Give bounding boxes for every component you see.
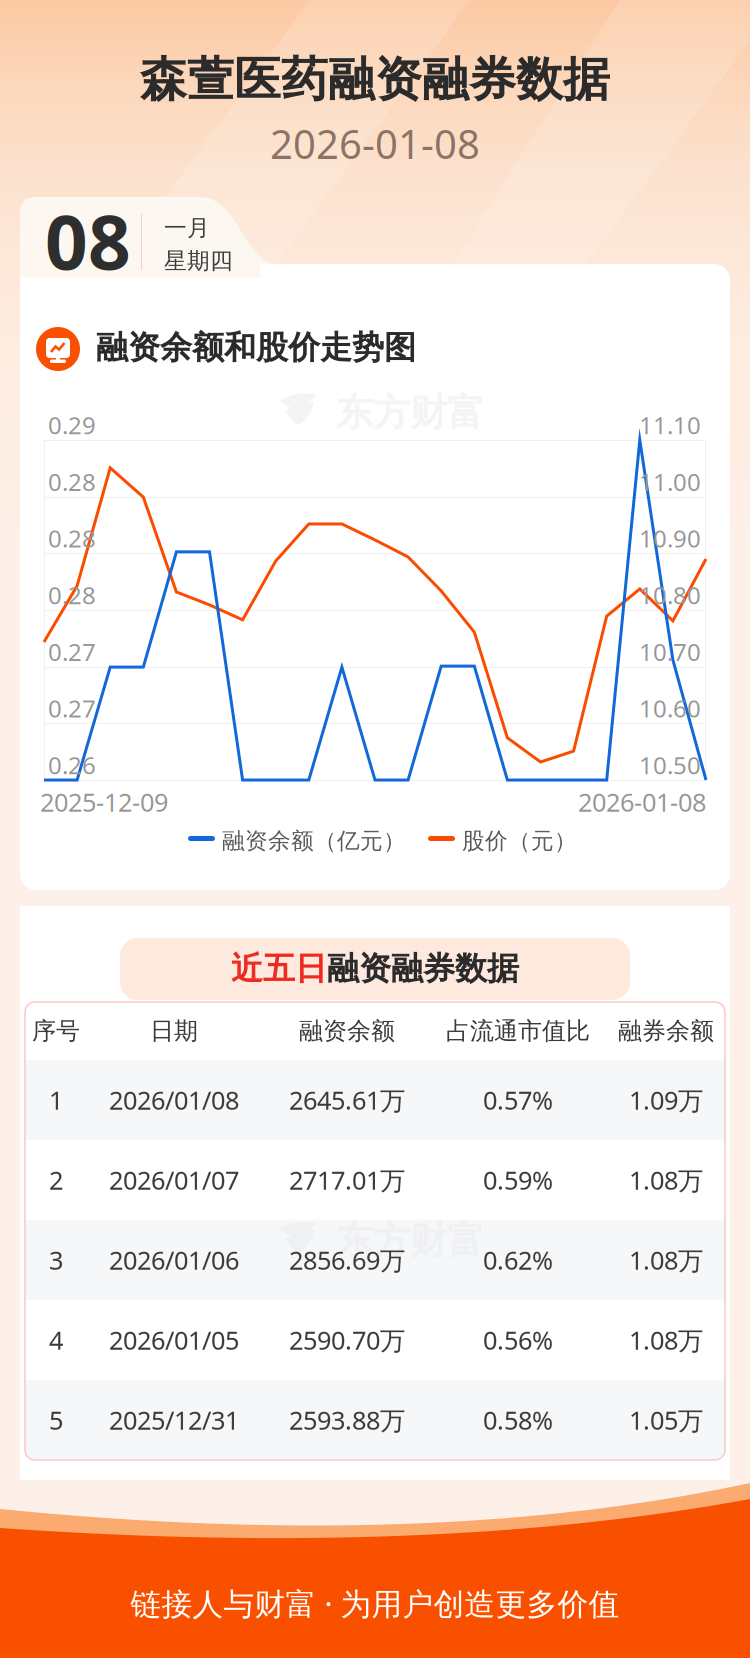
- staticText: 0.26: [48, 749, 96, 781]
- staticText: 近五日: [231, 949, 327, 988]
- staticText: 2593.88万: [289, 1403, 405, 1437]
- staticText: 0.29: [48, 409, 96, 441]
- staticText: 0.57%: [483, 1083, 553, 1117]
- staticText: 0.58%: [483, 1403, 553, 1437]
- staticText: 2026/01/08: [109, 1083, 239, 1117]
- staticText: 融资融券数据: [327, 949, 519, 988]
- staticText: 0.27: [48, 692, 96, 724]
- staticText: 1.08万: [629, 1163, 703, 1197]
- staticText: 日期: [150, 1016, 198, 1046]
- staticText: 2590.70万: [289, 1323, 405, 1357]
- staticText: 11.00: [639, 466, 701, 498]
- staticText: 链接人与财富 · 为用户创造更多价值: [130, 1583, 619, 1624]
- staticText: 0.28: [48, 579, 96, 611]
- staticText: 一月: [164, 214, 210, 242]
- staticText: 10.90: [639, 522, 701, 554]
- staticText: 10.80: [639, 579, 701, 611]
- staticText: 融资余额（亿元）: [222, 827, 406, 855]
- staticText: 2026-01-08: [270, 117, 480, 170]
- staticText: 2: [49, 1163, 63, 1197]
- staticText: 0.28: [48, 522, 96, 554]
- staticText: 1.08万: [629, 1243, 703, 1277]
- staticText: 东方财富: [336, 390, 484, 436]
- staticText: 10.70: [639, 636, 701, 668]
- staticText: 2025-12-09: [40, 785, 168, 819]
- staticText: 10.60: [639, 692, 701, 724]
- staticText: 5: [49, 1403, 63, 1437]
- staticText: 星期四: [164, 247, 233, 275]
- staticText: 序号: [32, 1016, 80, 1046]
- staticText: 4: [49, 1323, 63, 1357]
- staticText: 0.59%: [483, 1163, 553, 1197]
- staticText: 1.05万: [629, 1403, 703, 1437]
- staticText: 森萱医药融资融券数据: [140, 51, 610, 108]
- staticText: 2026/01/05: [109, 1323, 239, 1357]
- staticText: 2026-01-08: [578, 785, 706, 819]
- staticText: 1: [49, 1083, 63, 1117]
- staticText: 融资余额: [299, 1016, 395, 1046]
- staticText: 2856.69万: [289, 1243, 405, 1277]
- staticText: 1.08万: [629, 1323, 703, 1357]
- staticText: 0.28: [48, 466, 96, 498]
- staticText: 2026/01/07: [109, 1163, 239, 1197]
- staticText: 0.27: [48, 636, 96, 668]
- staticText: 3: [49, 1243, 63, 1277]
- staticText: 2025/12/31: [109, 1403, 239, 1437]
- staticText: 0.62%: [483, 1243, 553, 1277]
- staticText: 融资余额和股价走势图: [96, 328, 416, 367]
- staticText: 08: [45, 191, 131, 290]
- staticText: 11.10: [639, 409, 701, 441]
- staticText: 0.56%: [483, 1323, 553, 1357]
- staticText: 融券余额: [618, 1016, 714, 1046]
- staticText: 东方财富: [336, 1218, 484, 1264]
- staticText: 2026/01/06: [109, 1243, 239, 1277]
- staticText: 2717.01万: [289, 1163, 405, 1197]
- staticText: 股价（元）: [462, 827, 577, 855]
- staticText: 10.50: [639, 749, 701, 781]
- staticText: 1.09万: [629, 1083, 703, 1117]
- staticText: 2645.61万: [289, 1083, 405, 1117]
- staticText: 占流通市值比: [446, 1016, 590, 1046]
